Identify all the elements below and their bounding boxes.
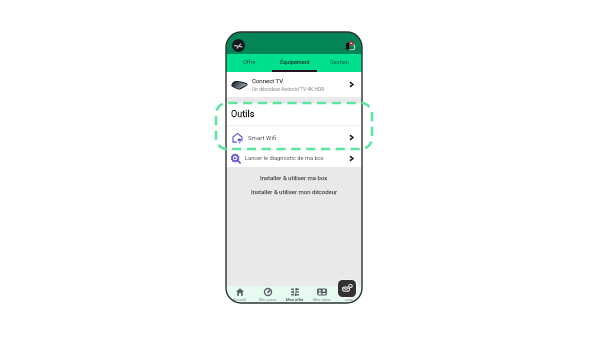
staticText: Un décodeur Android TV 4K HDR bbox=[252, 86, 325, 92]
button[interactable]: Mon offre bbox=[281, 286, 308, 303]
staticText: Lancer le diagnostic de ma box bbox=[245, 155, 324, 162]
button[interactable]: Lancer le diagnostic de ma box bbox=[226, 150, 362, 167]
staticText: Offre bbox=[243, 59, 256, 66]
staticText: Mes infos bbox=[313, 297, 331, 302]
button[interactable]: Smart Wifi bbox=[226, 126, 362, 149]
button[interactable]: Aide bbox=[335, 286, 362, 303]
button[interactable]: Équipement bbox=[272, 54, 317, 72]
button[interactable]: Ma conso bbox=[254, 286, 281, 303]
staticText: Connect TV bbox=[252, 77, 284, 84]
staticText: Aide bbox=[345, 297, 353, 302]
button[interactable]: Offre bbox=[226, 54, 272, 72]
button[interactable]: Mes infos bbox=[308, 286, 335, 303]
staticText: Mon offre bbox=[286, 297, 304, 302]
staticText: Ma conso bbox=[259, 297, 277, 302]
staticText: Équipement bbox=[280, 59, 310, 66]
staticText: Accueil bbox=[233, 297, 247, 302]
button[interactable]: Installer & utiliser mon décodeur bbox=[247, 186, 342, 197]
staticText: Outils bbox=[231, 109, 255, 120]
button[interactable]: Notifications bbox=[344, 39, 356, 51]
staticText: Smart Wifi bbox=[248, 134, 277, 141]
button[interactable]: Aide bbox=[338, 280, 356, 297]
staticText: Gestion bbox=[330, 59, 350, 66]
button[interactable]: Installer & utiliser ma box bbox=[256, 172, 332, 183]
button[interactable]: Connect TV bbox=[226, 72, 362, 97]
button[interactable]: Logo bbox=[232, 39, 245, 52]
button[interactable]: Accueil bbox=[226, 286, 254, 303]
button[interactable]: Gestion bbox=[317, 54, 362, 72]
